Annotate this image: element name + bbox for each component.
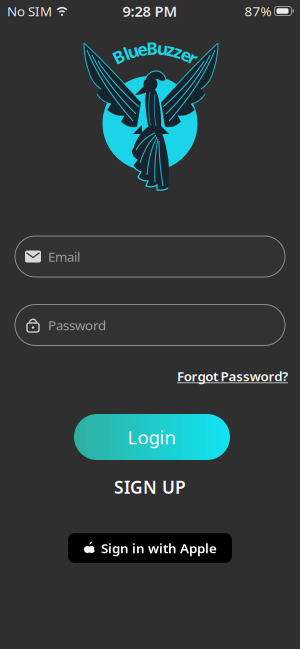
button[interactable]: Email (15, 236, 285, 277)
staticText: No SIM (7, 2, 52, 20)
button[interactable]: Login (74, 414, 230, 460)
staticText: u (128, 40, 139, 63)
staticText: 87% (244, 2, 271, 20)
button[interactable]: SIGN UP (114, 475, 186, 498)
staticText: l (124, 42, 129, 65)
button[interactable]: Sign in with Apple (68, 533, 232, 563)
staticText: 9:28 PM (122, 1, 177, 21)
staticText: SIGN UP (114, 475, 186, 498)
staticText: Password (48, 316, 106, 334)
staticText: z (174, 40, 183, 63)
staticText: e (137, 38, 147, 61)
staticText: Login (127, 425, 176, 449)
staticText: u (157, 37, 168, 60)
staticText: z (166, 38, 175, 61)
staticText: r (189, 46, 197, 69)
staticText: B (146, 36, 158, 59)
staticText: e (181, 43, 191, 66)
button[interactable]: Forgot Password? (177, 367, 288, 385)
button[interactable]: Password (15, 304, 285, 345)
staticText: Sign in with Apple (101, 539, 217, 557)
staticText: Email (48, 248, 80, 265)
staticText: B (113, 45, 125, 68)
staticText: Forgot Password? (177, 367, 288, 385)
